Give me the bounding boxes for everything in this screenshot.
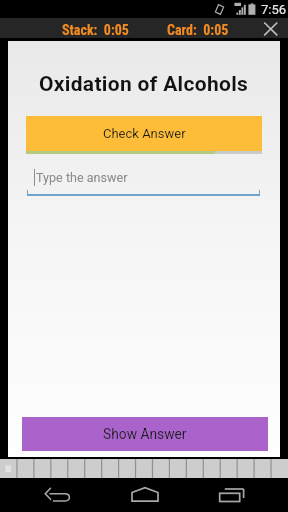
button[interactable]: Recents [210,478,254,512]
staticText: Type the answer [36,170,128,185]
button[interactable]: Back [36,478,80,512]
button[interactable]: Home [123,478,167,512]
staticText: Oxidation of Alcohols [39,72,249,96]
staticText: Stack: 0:05 [62,22,129,38]
button[interactable]: Close [252,18,288,38]
button[interactable]: Show Answer [22,417,268,451]
staticText: 7:56 [261,2,287,17]
button[interactable]: Check Answer [26,116,262,151]
staticText: Card: 0:05 [167,22,229,38]
staticText: Show Answer [103,426,187,442]
staticText: Check Answer [103,126,186,141]
